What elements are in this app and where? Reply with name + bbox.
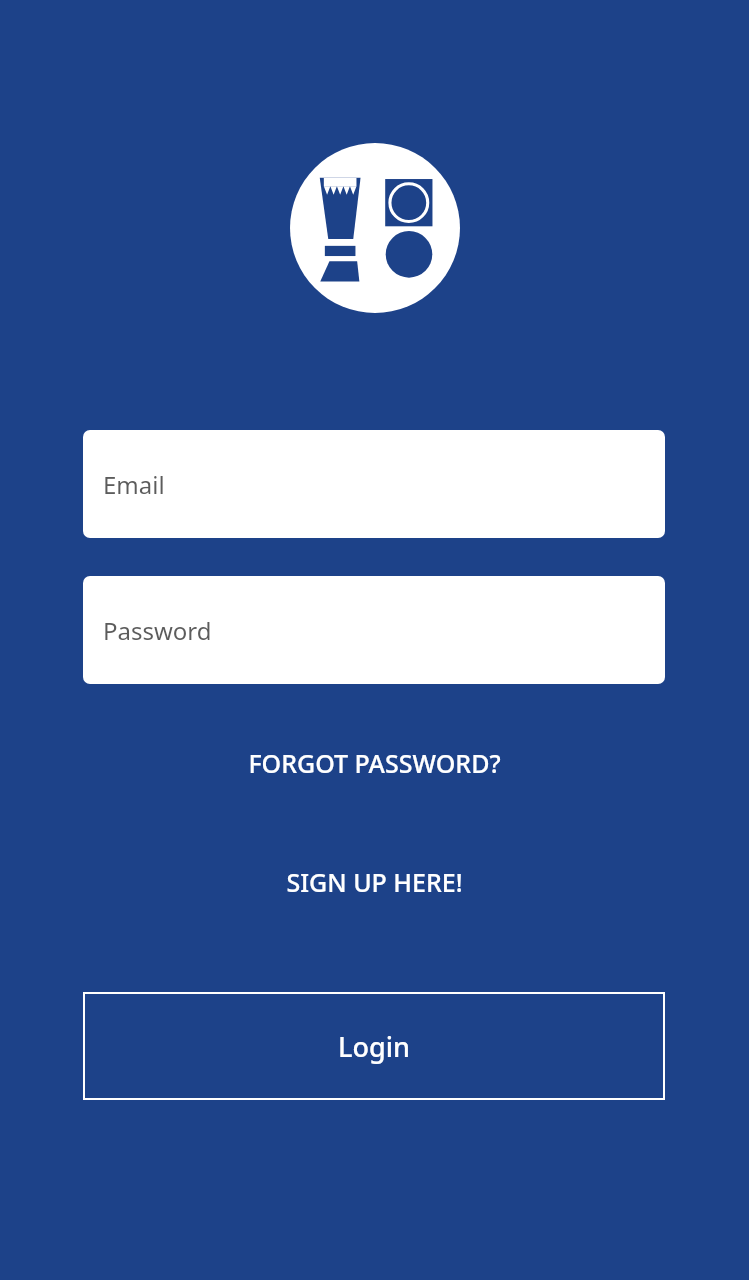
- button[interactable]: SIGN UP HERE!: [0, 854, 749, 910]
- staticText: Login: [338, 1028, 410, 1065]
- button[interactable]: Login: [83, 992, 665, 1100]
- button[interactable]: Password: [83, 576, 665, 684]
- button[interactable]: FORGOT PASSWORD?: [0, 735, 749, 791]
- staticText: SIGN UP HERE!: [286, 865, 463, 899]
- staticText: Email: [103, 468, 165, 501]
- other: App logo: [290, 143, 460, 313]
- button[interactable]: Email: [83, 430, 665, 538]
- staticText: FORGOT PASSWORD?: [248, 746, 501, 780]
- staticText: Password: [103, 614, 212, 647]
